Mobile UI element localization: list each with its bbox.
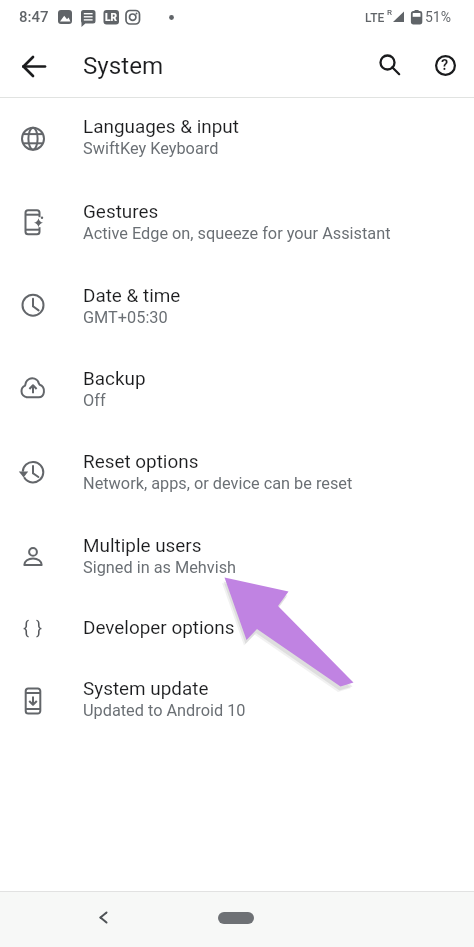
staticText: LTE	[365, 11, 385, 25]
staticText: SwiftKey Keyboard	[83, 139, 219, 158]
button[interactable]: Developer options	[0, 602, 474, 663]
staticText: Off	[83, 391, 106, 410]
staticText: Signed in as Mehvish	[83, 558, 237, 577]
staticText: R	[387, 8, 392, 17]
staticText: ?	[441, 57, 449, 74]
staticText: 51%	[425, 9, 451, 25]
staticText: System update	[83, 677, 209, 699]
button[interactable]	[218, 912, 254, 924]
staticText: Backup	[83, 367, 146, 389]
staticText: Developer options	[83, 616, 235, 638]
button[interactable]	[80, 896, 126, 942]
button[interactable]: Reset options	[0, 433, 474, 517]
staticText: }	[36, 617, 43, 638]
button[interactable]: Date & time	[0, 267, 474, 351]
staticText: Multiple users	[83, 534, 202, 556]
staticText: LR	[105, 12, 117, 24]
staticText: Network, apps, or device can be reset	[83, 474, 353, 493]
staticText: {	[23, 617, 30, 638]
button[interactable]: ?	[422, 42, 468, 88]
button[interactable]: Languages & input	[0, 98, 474, 182]
staticText: 8:47	[19, 8, 49, 26]
button[interactable]	[365, 40, 411, 86]
button[interactable]: Backup	[0, 350, 474, 434]
button[interactable]: System update	[0, 660, 474, 744]
button[interactable]	[10, 42, 56, 88]
staticText: Updated to Android 10	[83, 701, 246, 720]
staticText: System	[83, 52, 164, 80]
button[interactable]: Multiple users	[0, 517, 474, 601]
staticText: Languages & input	[83, 115, 239, 137]
staticText: Active Edge on, squeeze for your Assista…	[83, 224, 391, 243]
staticText: Reset options	[83, 450, 199, 472]
staticText: Gestures	[83, 200, 159, 222]
staticText: Date & time	[83, 284, 181, 306]
button[interactable]: Gestures	[0, 183, 474, 267]
staticText: GMT+05:30	[83, 308, 168, 327]
